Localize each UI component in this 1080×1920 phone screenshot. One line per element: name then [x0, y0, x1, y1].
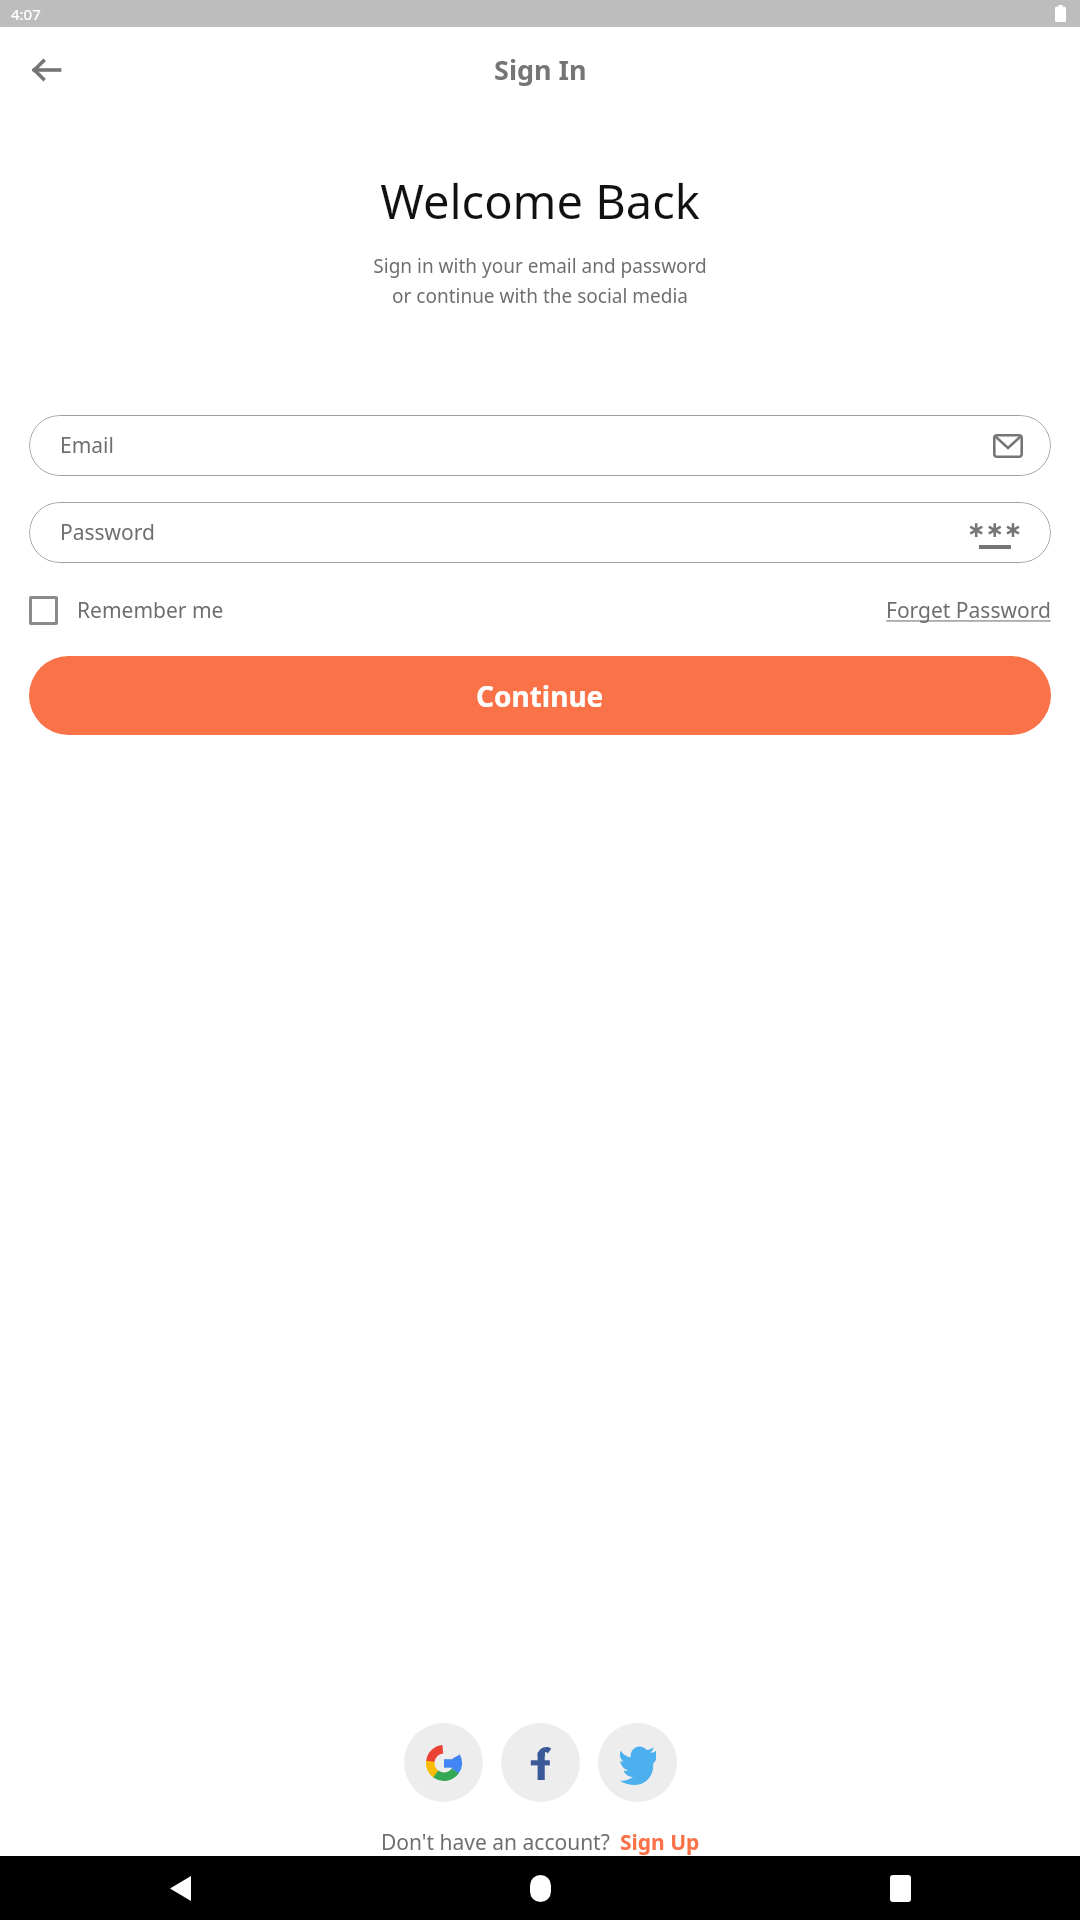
- button[interactable]: Sign in with Twitter: [598, 1723, 677, 1802]
- button[interactable]: Back: [0, 1856, 360, 1920]
- button[interactable]: Home: [360, 1856, 720, 1920]
- staticText: Password: [60, 518, 155, 547]
- button[interactable]: Sign Up: [620, 1828, 700, 1857]
- staticText: Forget Password: [886, 596, 1051, 625]
- button[interactable]: Forget Password: [886, 596, 1051, 625]
- button[interactable]: Email: [29, 415, 1051, 476]
- staticText: Don't have an account?: [381, 1828, 610, 1857]
- staticText: Welcome Back: [380, 169, 700, 233]
- button[interactable]: Back: [21, 44, 73, 96]
- staticText: 4:07: [11, 4, 41, 24]
- button[interactable]: Remember me: [29, 596, 224, 625]
- staticText: Email: [60, 431, 114, 460]
- staticText: Continue: [476, 677, 604, 715]
- button[interactable]: Sign in with Google: [404, 1723, 483, 1802]
- button[interactable]: Sign in with Facebook: [501, 1723, 580, 1802]
- button[interactable]: Recent apps: [720, 1856, 1080, 1920]
- button[interactable]: Password: [29, 502, 1051, 563]
- staticText: Sign Up: [620, 1828, 700, 1857]
- staticText: ∗∗∗: [967, 517, 1023, 543]
- staticText: Remember me: [77, 596, 224, 625]
- staticText: Sign In: [494, 51, 587, 88]
- button[interactable]: Continue: [29, 656, 1051, 735]
- staticText: Sign in with your email and password or …: [373, 253, 707, 308]
